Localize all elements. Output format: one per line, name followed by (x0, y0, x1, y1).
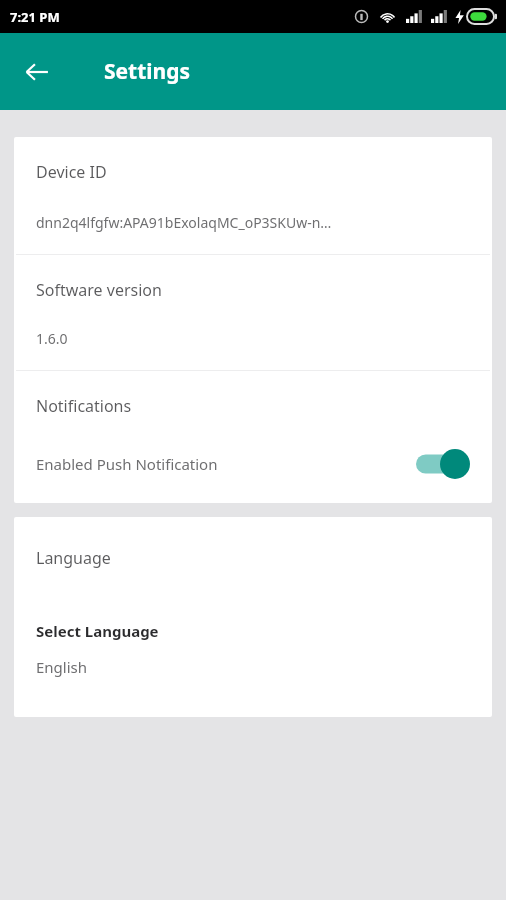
staticText: Device ID (36, 161, 107, 183)
button[interactable]: Software version (14, 255, 492, 370)
staticText: 7:21 PM (10, 8, 60, 26)
staticText: Notifications (36, 395, 132, 417)
staticText: 1.6.0 (36, 329, 68, 348)
staticText: Language (36, 547, 111, 569)
staticText: Software version (36, 279, 162, 301)
button[interactable]: Device ID (14, 137, 492, 254)
button[interactable]: Back (14, 49, 60, 95)
staticText: Enabled Push Notification (36, 454, 416, 474)
button[interactable]: Language (14, 517, 492, 717)
button[interactable]: Enabled Push Notification (36, 443, 470, 485)
staticText: Settings (104, 57, 191, 86)
staticText: Select Language (36, 621, 159, 641)
staticText: English (36, 657, 88, 677)
staticText: dnn2q4lfgfw:APA91bExolaqMC_oP3SKUw-n… (36, 213, 332, 232)
